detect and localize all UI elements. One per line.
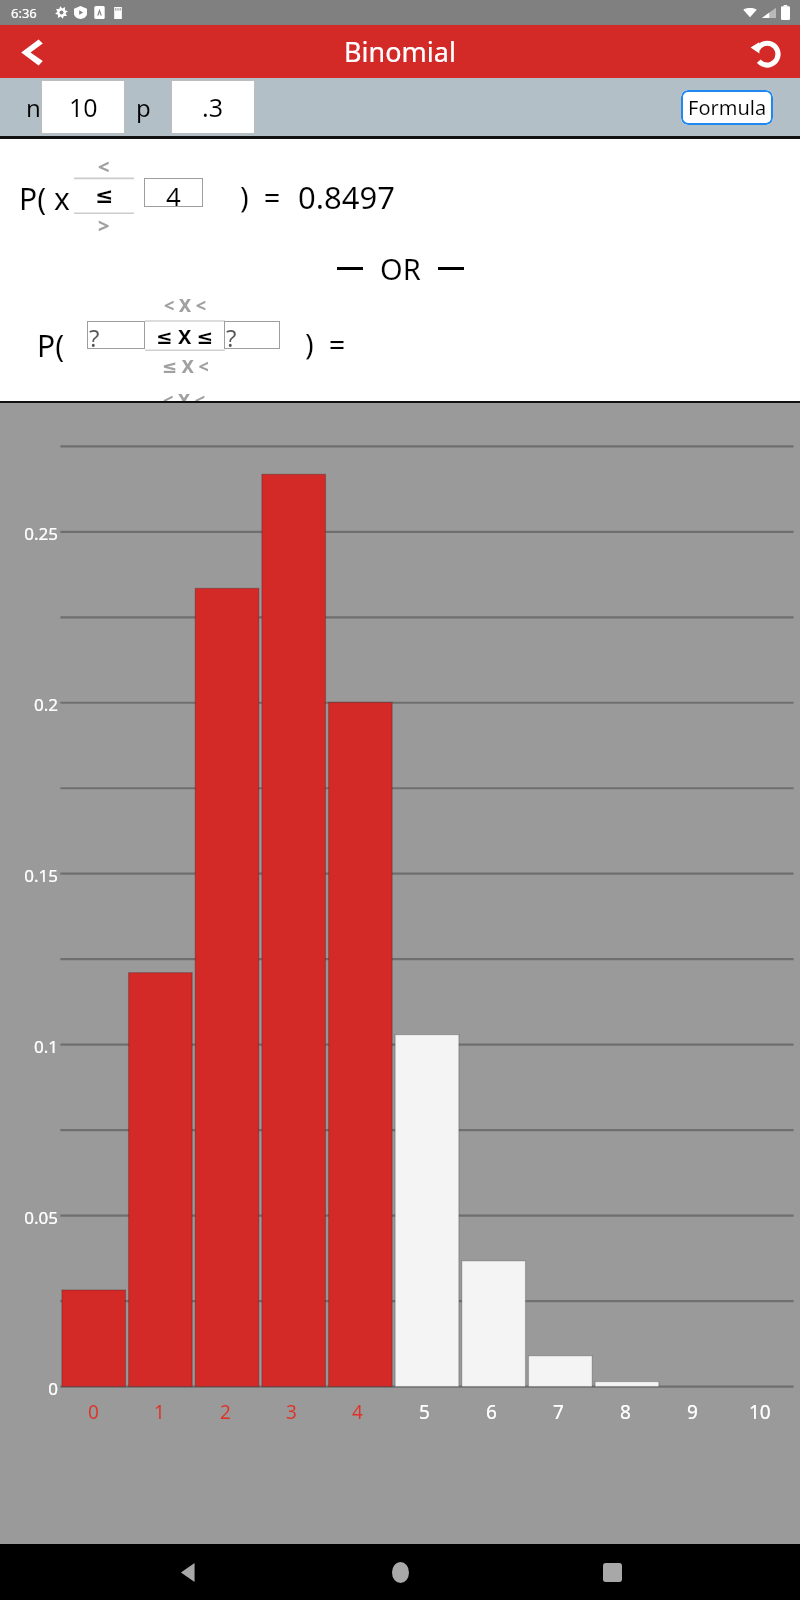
staticText: 0 bbox=[2, 1377, 58, 1400]
staticText: P( bbox=[37, 325, 65, 366]
staticText: 6:36 bbox=[11, 4, 37, 22]
button[interactable]: Interval operator bbox=[145, 293, 225, 379]
staticText: 0.8497 bbox=[298, 176, 395, 218]
staticText: 4 bbox=[352, 1399, 363, 1425]
button[interactable]: Formula bbox=[681, 90, 773, 125]
staticText: 0.05 bbox=[2, 1206, 58, 1229]
staticText: n bbox=[26, 91, 41, 124]
staticText: OR bbox=[380, 249, 421, 288]
button[interactable]: ? bbox=[224, 321, 280, 349]
button[interactable]: .3 bbox=[171, 80, 255, 134]
button[interactable]: Back bbox=[164, 1548, 212, 1596]
button[interactable]: Recent apps bbox=[588, 1548, 636, 1596]
button[interactable]: Comparison operator bbox=[74, 153, 134, 239]
button[interactable]: Reset bbox=[742, 28, 790, 76]
staticText: 0.2 bbox=[2, 693, 58, 716]
button[interactable]: ? bbox=[87, 321, 145, 349]
staticText: ≤ bbox=[95, 183, 114, 209]
staticText: ) = bbox=[240, 177, 281, 216]
staticText: .3 bbox=[202, 90, 224, 124]
staticText: 6 bbox=[486, 1399, 497, 1425]
staticText: ≤ X ≤ bbox=[156, 323, 214, 350]
staticText: ? bbox=[89, 321, 100, 349]
staticText: 10 bbox=[69, 90, 98, 124]
staticText: 5 bbox=[419, 1399, 430, 1425]
staticText: Formula bbox=[688, 94, 767, 121]
button[interactable]: Back bbox=[8, 28, 56, 76]
staticText: 0 bbox=[88, 1399, 99, 1425]
staticText: 2 bbox=[220, 1399, 231, 1425]
staticText: 0.1 bbox=[2, 1035, 58, 1058]
staticText: 0.25 bbox=[2, 522, 58, 545]
staticText: ) = bbox=[305, 324, 346, 363]
staticText: < X < bbox=[163, 388, 206, 401]
staticText: < X < bbox=[164, 293, 207, 318]
staticText: Binomial bbox=[344, 33, 456, 70]
button[interactable]: 4 bbox=[144, 178, 203, 207]
staticText: < bbox=[98, 153, 110, 180]
staticText: ? bbox=[226, 321, 237, 349]
staticText: 8 bbox=[620, 1399, 631, 1425]
staticText: 4 bbox=[166, 178, 181, 207]
staticText: P( x bbox=[19, 178, 70, 219]
staticText: > bbox=[98, 212, 110, 239]
button[interactable]: 10 bbox=[41, 80, 125, 134]
staticText: 0.15 bbox=[2, 864, 58, 887]
staticText: 10 bbox=[749, 1399, 771, 1425]
button[interactable]: Home bbox=[376, 1548, 424, 1596]
staticText: 9 bbox=[687, 1399, 698, 1425]
staticText: 1 bbox=[154, 1399, 165, 1425]
staticText: 3 bbox=[286, 1399, 297, 1425]
staticText: p bbox=[136, 91, 151, 124]
staticText: ≤ X < bbox=[162, 354, 209, 379]
staticText: 7 bbox=[553, 1399, 564, 1425]
